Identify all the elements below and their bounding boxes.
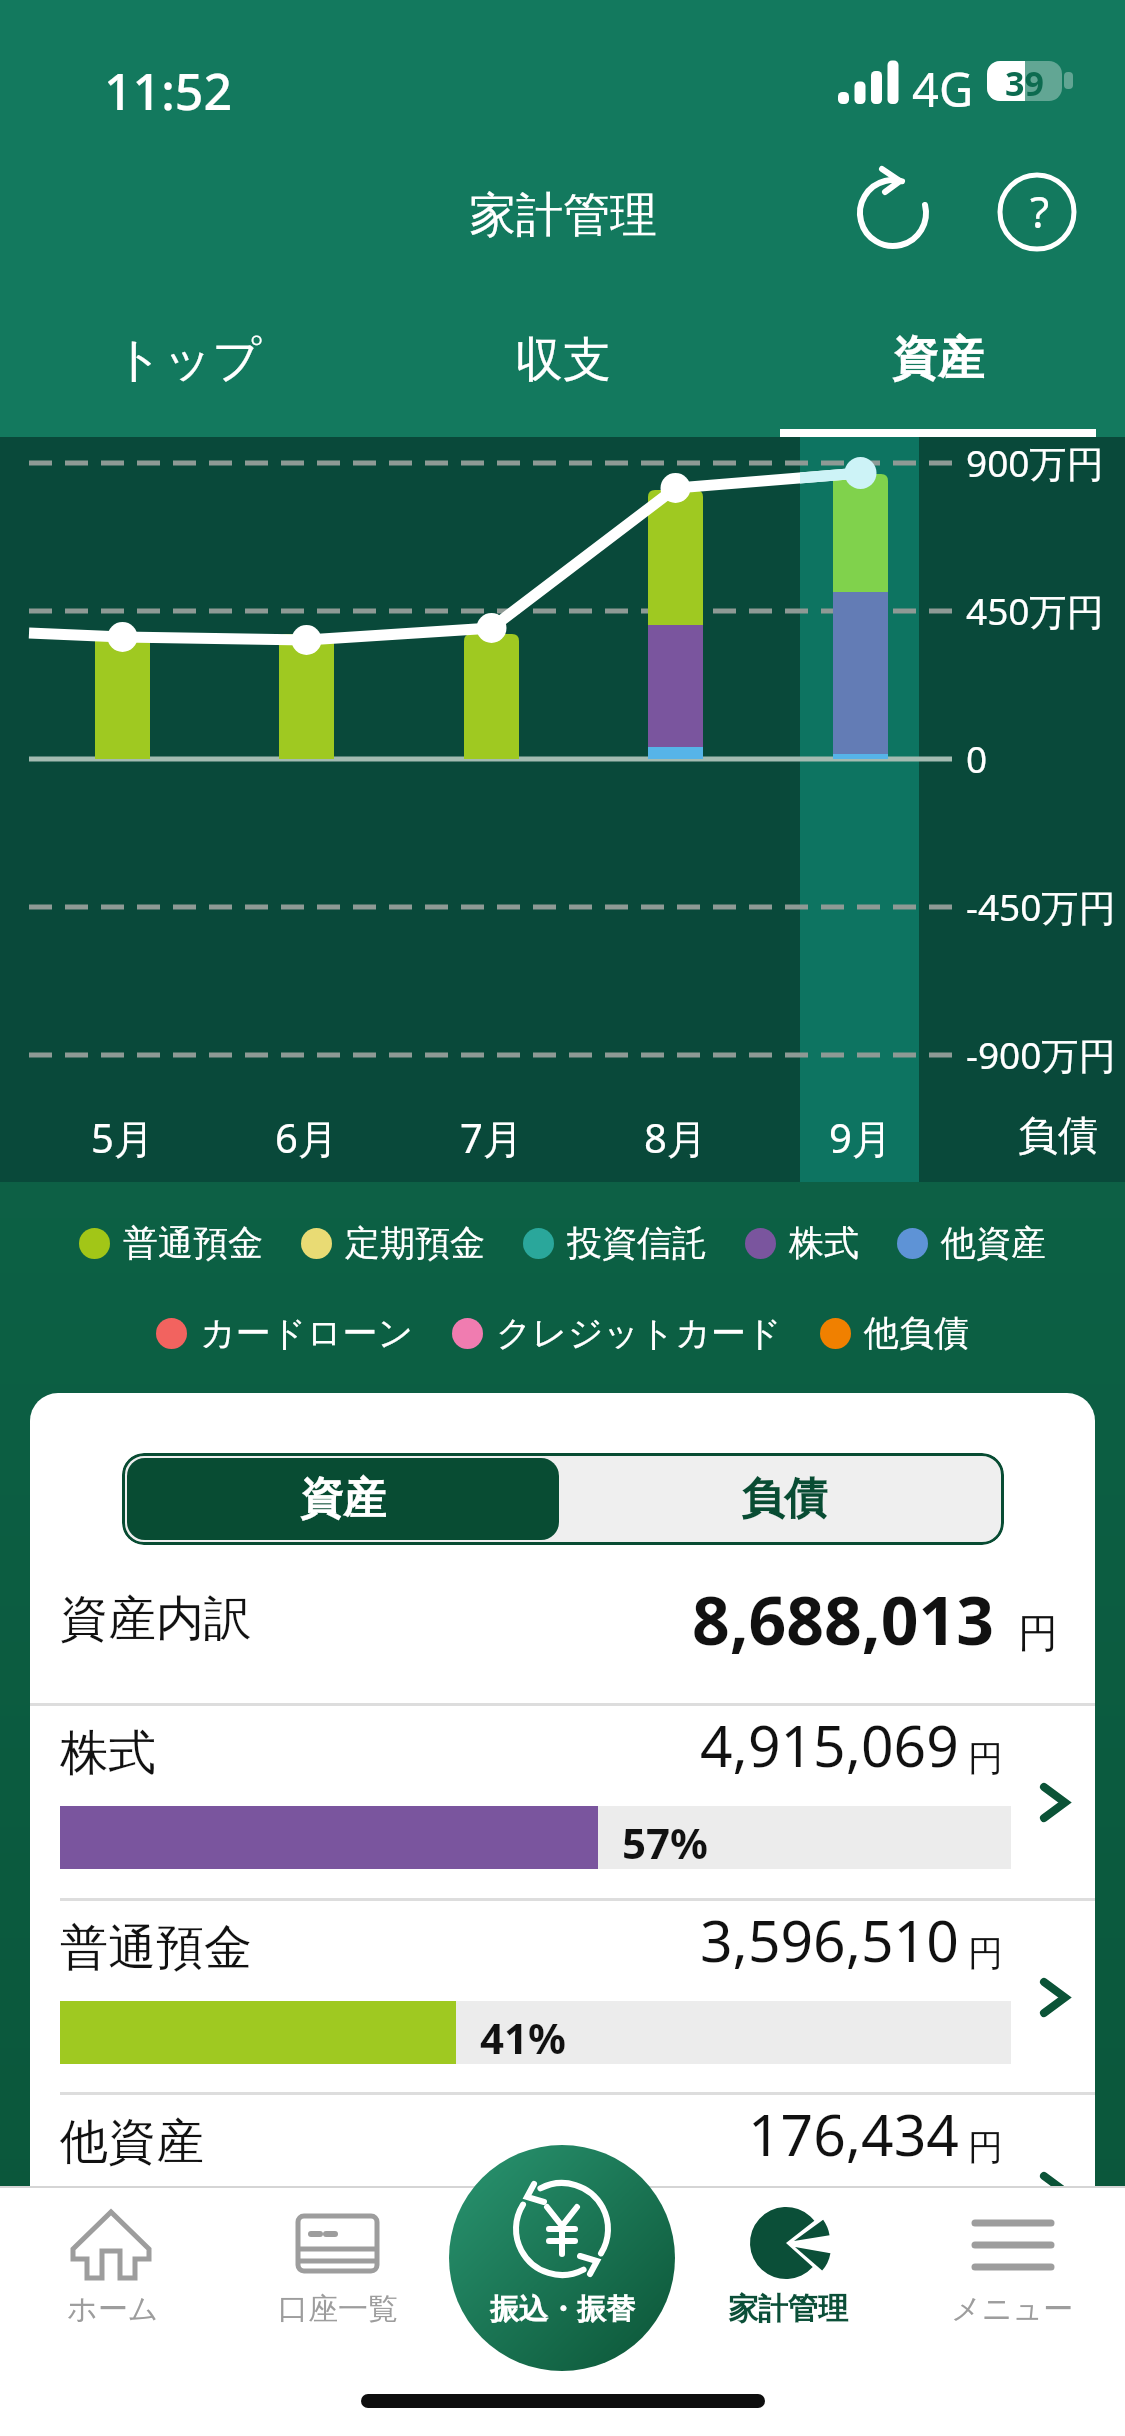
staticText: 家計管理	[469, 186, 657, 245]
button[interactable]: 定期預金	[301, 1221, 485, 1265]
button[interactable]: 家計管理	[675, 2186, 900, 2366]
staticText: 円	[1018, 1608, 1058, 1658]
button[interactable]: 株式	[745, 1221, 859, 1265]
button[interactable]: 収支	[375, 314, 750, 437]
button[interactable]: 他資産	[897, 1221, 1046, 1265]
staticText: 他資産	[941, 1221, 1046, 1265]
staticText: 収支	[515, 330, 611, 390]
button[interactable]: クレジットカード	[452, 1311, 782, 1355]
button[interactable]: 資産内訳	[30, 1545, 1095, 1703]
staticText: カードローン	[200, 1311, 414, 1355]
staticText: 普通預金	[123, 1221, 263, 1265]
staticText: 家計管理	[728, 2290, 848, 2328]
button[interactable]: 負債	[563, 1453, 1004, 1545]
staticText: 負債	[1018, 1110, 1098, 1160]
staticText: 9月	[829, 1110, 892, 1165]
staticText: 7月	[460, 1110, 523, 1165]
staticText: ?	[1030, 181, 1050, 241]
staticText: 他負債	[864, 1311, 969, 1355]
button[interactable]: 投資信託	[523, 1221, 707, 1265]
staticText: 176,434	[748, 2095, 959, 2173]
staticText: 57%	[622, 1814, 708, 1871]
staticText: 投資信託	[567, 1221, 707, 1265]
button[interactable]: トップ	[0, 314, 375, 437]
staticText: 円	[968, 1736, 1003, 1780]
button[interactable]: 資産	[127, 1458, 559, 1540]
button[interactable]: ホーム	[0, 2186, 225, 2366]
staticText: 39	[1005, 61, 1044, 100]
button[interactable]: 株式	[30, 1703, 1095, 1898]
staticText: 円	[968, 1931, 1003, 1975]
staticText: 普通預金	[60, 1918, 252, 1978]
staticText: -900万円	[966, 1029, 1116, 1080]
button[interactable]: カードローン	[156, 1311, 414, 1355]
staticText: 負債	[741, 1472, 827, 1526]
staticText: 8月	[644, 1110, 707, 1165]
staticText: 株式	[60, 1723, 156, 1783]
button[interactable]: 普通預金	[30, 1898, 1095, 2093]
button[interactable]: Refresh	[845, 164, 941, 260]
staticText: 5月	[91, 1110, 154, 1165]
button[interactable]: 他負債	[820, 1311, 969, 1355]
staticText: 450万円	[966, 585, 1104, 636]
staticText: 41%	[480, 2009, 566, 2066]
staticText: 3,596,510	[700, 1901, 959, 1979]
staticText: 4G	[912, 57, 974, 121]
staticText: 株式	[789, 1221, 859, 1265]
staticText: 他資産	[60, 2112, 204, 2172]
button[interactable]: 普通預金	[79, 1221, 263, 1265]
staticText: ホーム	[67, 2290, 159, 2328]
staticText: 4,915,069	[700, 1706, 959, 1784]
staticText: 900万円	[966, 437, 1104, 488]
button[interactable]: 口座一覧	[225, 2186, 450, 2366]
staticText: 11:52	[104, 57, 232, 125]
staticText: メニュー	[951, 2290, 1074, 2328]
button[interactable]: メニュー	[900, 2186, 1125, 2366]
staticText: 資産	[300, 1472, 386, 1526]
staticText: 定期預金	[345, 1221, 485, 1265]
staticText: 0	[966, 733, 988, 783]
button[interactable]: 資産	[750, 314, 1125, 437]
staticText: クレジットカード	[496, 1311, 782, 1355]
staticText: 資産内訳	[60, 1589, 252, 1649]
button[interactable]: Help	[989, 164, 1085, 260]
staticText: トップ	[114, 330, 262, 390]
staticText: 8,688,013	[692, 1574, 994, 1664]
staticText: 資産	[892, 330, 984, 388]
button[interactable]: 振込・振替	[449, 2145, 675, 2371]
button[interactable]: 他資産	[30, 2092, 1095, 2186]
staticText: 円	[968, 2125, 1003, 2169]
staticText: -450万円	[966, 881, 1116, 932]
staticText: 6月	[275, 1110, 338, 1165]
staticText: 振込・振替	[490, 2291, 635, 2328]
staticText: 口座一覧	[278, 2290, 398, 2328]
